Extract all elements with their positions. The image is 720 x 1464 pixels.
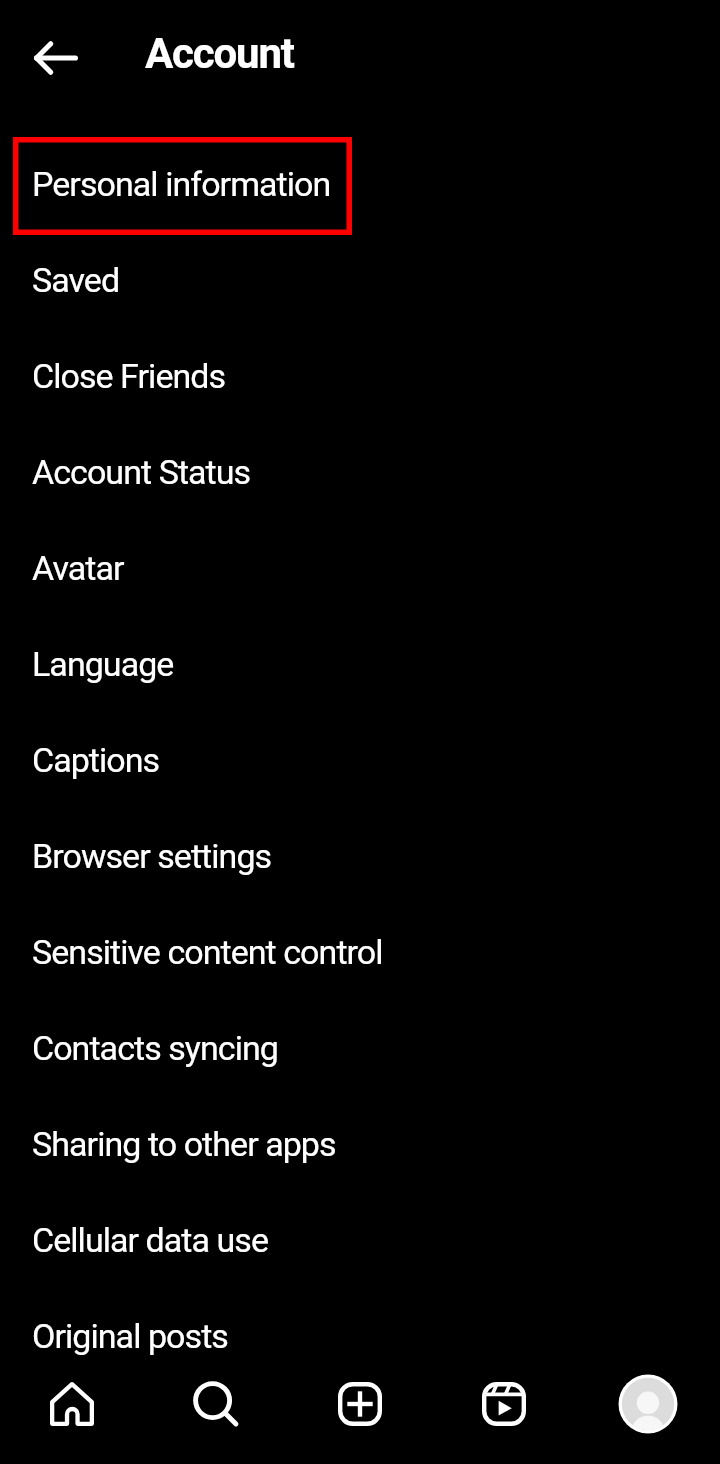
staticText: Saved bbox=[32, 260, 120, 300]
button[interactable]: Create bbox=[288, 1344, 432, 1464]
button[interactable]: Captions bbox=[0, 712, 720, 808]
button[interactable]: Back bbox=[12, 14, 100, 102]
staticText: Captions bbox=[32, 740, 160, 780]
button[interactable]: Personal information bbox=[0, 136, 720, 232]
staticText: Original posts bbox=[32, 1316, 228, 1356]
staticText: Account Status bbox=[32, 452, 251, 492]
staticText: Sensitive content control bbox=[32, 932, 383, 972]
staticText: Avatar bbox=[32, 548, 124, 588]
staticText: Personal information bbox=[32, 164, 331, 204]
button[interactable]: Language bbox=[0, 616, 720, 712]
button[interactable]: Contacts syncing bbox=[0, 1000, 720, 1096]
staticText: Contacts syncing bbox=[32, 1028, 278, 1068]
staticText: Browser settings bbox=[32, 836, 272, 876]
staticText: Cellular data use bbox=[32, 1220, 269, 1260]
button[interactable]: Sharing to other apps bbox=[0, 1096, 720, 1192]
button[interactable]: Avatar bbox=[0, 520, 720, 616]
staticText: Account bbox=[145, 29, 294, 78]
button[interactable]: Sensitive content control bbox=[0, 904, 720, 1000]
button[interactable]: Profile bbox=[576, 1344, 720, 1464]
staticText: Close Friends bbox=[32, 356, 226, 396]
button[interactable]: Reels bbox=[432, 1344, 576, 1464]
button[interactable]: Original posts bbox=[0, 1288, 720, 1384]
button[interactable]: Search bbox=[144, 1344, 288, 1464]
staticText: Language bbox=[32, 644, 174, 684]
button[interactable]: Browser settings bbox=[0, 808, 720, 904]
button[interactable]: Cellular data use bbox=[0, 1192, 720, 1288]
button[interactable]: Account Status bbox=[0, 424, 720, 520]
button[interactable]: Close Friends bbox=[0, 328, 720, 424]
staticText: Sharing to other apps bbox=[32, 1124, 336, 1164]
button[interactable]: Home bbox=[0, 1344, 144, 1464]
button[interactable]: Saved bbox=[0, 232, 720, 328]
